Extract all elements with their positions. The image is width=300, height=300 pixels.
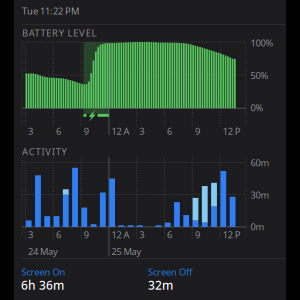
staticText: 12 A	[111, 228, 129, 241]
staticText: 3	[139, 125, 144, 137]
staticText: 12 P	[223, 228, 241, 241]
staticText: 9	[84, 125, 89, 137]
staticText: BATTERY LEVEL	[22, 27, 97, 39]
staticText: 3	[28, 228, 33, 241]
staticText: Tue 11:22 PM	[22, 5, 79, 17]
staticText: 0%	[250, 101, 263, 114]
staticText: 6	[56, 125, 61, 137]
staticText: 100%	[250, 37, 273, 49]
staticText: 30m	[250, 189, 269, 201]
staticText: 3	[139, 228, 144, 241]
staticText: 6	[56, 228, 61, 241]
staticText: 6h 36m	[21, 277, 64, 293]
staticText: 25 May	[111, 245, 141, 258]
staticText: 12 P	[223, 125, 241, 137]
staticText: Screen Off	[148, 266, 192, 278]
staticText: 12 A	[111, 125, 129, 137]
staticText: Screen On	[21, 266, 65, 278]
staticText: 9	[84, 228, 89, 241]
staticText: 24 May	[28, 245, 58, 258]
staticText: 50%	[250, 69, 268, 81]
staticText: ACTIVITY	[22, 145, 67, 158]
staticText: 0m	[250, 220, 264, 233]
staticText: 3	[28, 125, 33, 137]
staticText: 9	[195, 125, 200, 137]
staticText: 6	[167, 228, 172, 241]
staticText: 6	[167, 125, 172, 137]
staticText: 9	[195, 228, 200, 241]
staticText: 60m	[250, 156, 269, 169]
staticText: 32m	[148, 277, 173, 293]
